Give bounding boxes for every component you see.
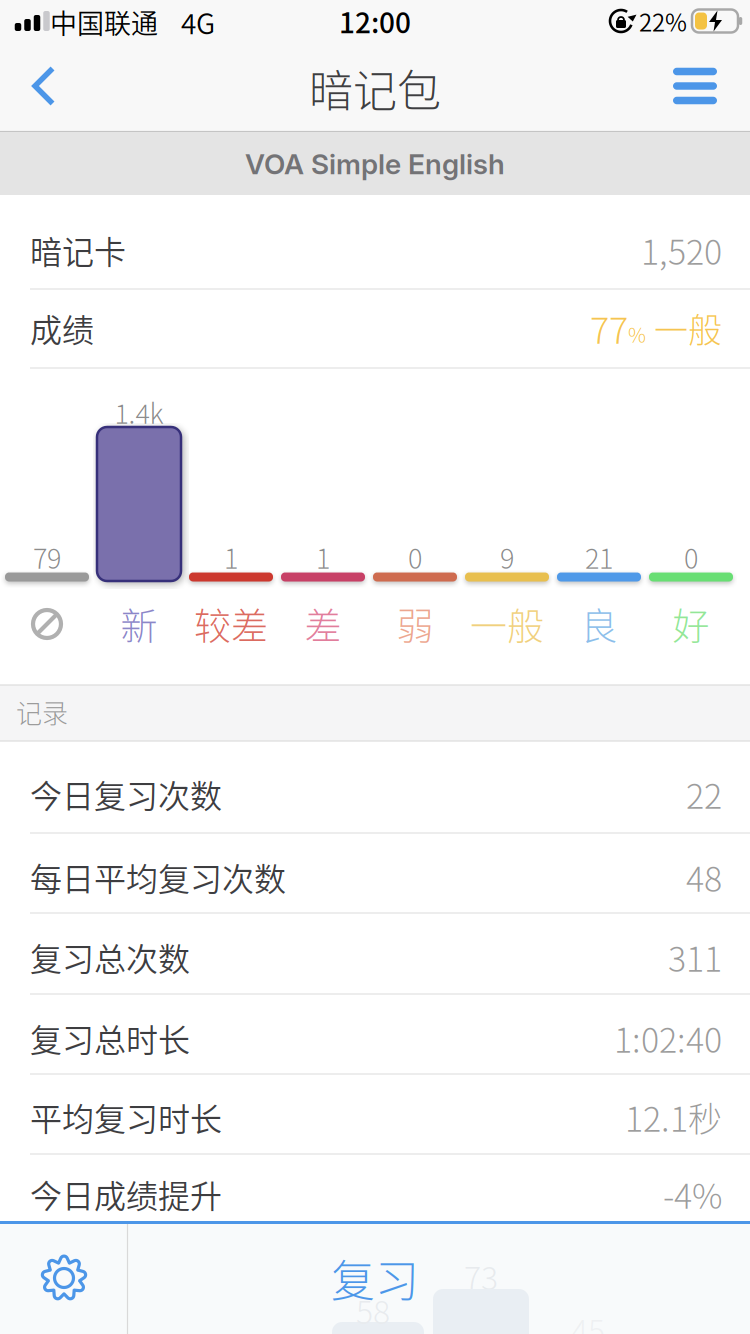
staticText: 9	[500, 537, 514, 577]
staticText: 复习总时长	[30, 1015, 190, 1061]
staticText: 12.1秒	[625, 1092, 722, 1142]
staticText: 1:02:40	[614, 1013, 722, 1063]
staticText: -4%	[663, 1169, 722, 1219]
staticText: 弱	[396, 597, 433, 651]
staticText: 今日复习次数	[30, 771, 222, 817]
staticText: 79	[33, 537, 61, 577]
button[interactable]: Menu	[665, 59, 725, 113]
staticText: 中国联通	[50, 2, 158, 42]
button[interactable]: 复习	[225, 1233, 525, 1323]
staticText: 77	[590, 302, 628, 354]
button[interactable]: Back	[14, 56, 74, 116]
staticText: 一般	[470, 597, 544, 651]
staticText: 12:00	[339, 1, 411, 41]
staticText: 今日成绩提升	[30, 1171, 222, 1217]
staticText: 平均复习时长	[30, 1094, 222, 1140]
staticText: 22%	[639, 4, 687, 38]
staticText: 4G	[181, 2, 215, 42]
staticText: 58	[356, 1287, 390, 1333]
staticText: 复习总次数	[30, 934, 190, 980]
button[interactable]: Settings	[19, 1233, 109, 1323]
staticText: 记录	[16, 693, 68, 731]
staticText: 0	[408, 537, 422, 577]
staticText: %	[628, 319, 646, 348]
staticText: 1,520	[641, 225, 722, 275]
staticText: 311	[668, 932, 722, 982]
staticText: VOA Simple English	[245, 147, 505, 181]
staticText: 良	[580, 597, 617, 651]
staticText: 0	[684, 537, 698, 577]
staticText: 22	[686, 769, 722, 819]
staticText: 每日平均复习次数	[30, 854, 286, 900]
staticText: 新	[120, 597, 157, 651]
staticText: 1	[316, 537, 330, 577]
staticText: 暗记包	[309, 56, 441, 120]
staticText: 48	[686, 852, 722, 902]
staticText: 好	[672, 597, 709, 651]
staticText: 较差	[194, 597, 268, 651]
staticText: 差	[304, 597, 341, 651]
staticText: 1	[224, 537, 238, 577]
staticText: 一般	[646, 303, 722, 353]
staticText: 73	[464, 1253, 498, 1299]
staticText: 复习	[331, 1246, 419, 1310]
staticText: 1.4k	[114, 392, 163, 432]
staticText: 暗记卡	[30, 227, 126, 273]
staticText: 成绩	[30, 305, 94, 351]
staticText: 21	[585, 537, 613, 577]
